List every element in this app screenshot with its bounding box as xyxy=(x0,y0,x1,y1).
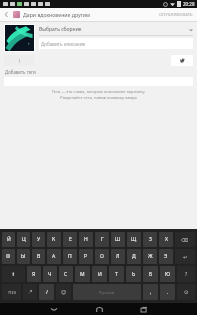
button[interactable]: К xyxy=(47,232,61,247)
staticText: Русский xyxy=(99,290,115,295)
staticText: Г xyxy=(101,236,104,243)
staticText: ОПУБЛИКОВАТЬ xyxy=(159,12,193,18)
staticText: ⬆ xyxy=(11,271,16,277)
button[interactable]: Поделиться xyxy=(4,55,34,66)
button[interactable]: О xyxy=(95,249,109,264)
button[interactable]: Добавить описание xyxy=(39,38,193,49)
button[interactable]: Ч xyxy=(43,266,57,282)
button[interactable]: ? xyxy=(177,266,195,282)
button[interactable]: Ввод xyxy=(177,284,195,300)
staticText: ☺ xyxy=(61,289,67,295)
button[interactable]: Ф xyxy=(2,249,15,264)
staticText: 🎤 xyxy=(28,290,33,294)
button[interactable]: Голосовой ввод xyxy=(23,284,37,300)
staticText: , xyxy=(150,289,152,296)
button[interactable]: Я xyxy=(27,266,41,282)
staticText: Ч xyxy=(48,271,52,278)
button[interactable]: Т xyxy=(109,266,124,282)
staticText: Разделяйте теги, нажав клавишу ввода xyxy=(0,95,197,100)
button[interactable]: ⌫ xyxy=(175,232,195,247)
button[interactable]: Главный экран xyxy=(85,303,113,315)
staticText: Добавить описание xyxy=(41,41,86,47)
button[interactable]: Р xyxy=(79,249,93,264)
staticText: Ф xyxy=(6,253,11,260)
button[interactable]: Ц xyxy=(17,232,30,247)
button[interactable]: Л xyxy=(111,249,125,264)
button[interactable]: Эмодзи xyxy=(56,284,71,300)
staticText: Ц xyxy=(22,236,26,243)
staticText: . xyxy=(167,289,169,296)
staticText: Теги — это слова, которые описывают карт… xyxy=(0,89,197,94)
staticText: Т xyxy=(115,271,118,278)
button[interactable]: У xyxy=(32,232,45,247)
staticText: Б xyxy=(149,271,153,278)
button[interactable]: Ж xyxy=(143,249,157,264)
button[interactable]: Й xyxy=(2,232,15,247)
button[interactable]: ↵ xyxy=(175,249,195,264)
button[interactable]: Изображение xyxy=(5,25,34,51)
button[interactable]: Назад xyxy=(40,303,68,315)
staticText: ? xyxy=(185,271,188,278)
staticText: П xyxy=(68,253,72,260)
button[interactable]: В xyxy=(32,249,45,264)
staticText: Р xyxy=(84,253,88,260)
staticText: Е xyxy=(69,236,72,243)
staticText: Ы xyxy=(21,253,26,260)
button[interactable]: Ю xyxy=(160,266,175,282)
button[interactable]: З xyxy=(143,232,157,247)
staticText: Й xyxy=(7,236,11,243)
staticText: С xyxy=(64,271,68,278)
button[interactable]: Ы xyxy=(17,249,30,264)
staticText: ↵ xyxy=(183,254,188,260)
staticText: / xyxy=(46,289,48,296)
staticText: Дари вдохновение другим xyxy=(23,11,91,18)
button[interactable]: Б xyxy=(143,266,158,282)
button[interactable]: М xyxy=(75,266,90,282)
button[interactable]: Х xyxy=(159,232,173,247)
button[interactable]: Пробел xyxy=(73,284,141,300)
staticText: М xyxy=(80,271,85,278)
staticText: И xyxy=(98,271,102,278)
staticText: 20:28 xyxy=(183,1,195,7)
button[interactable]: П xyxy=(63,249,77,264)
button[interactable]: Ь xyxy=(126,266,141,282)
button[interactable]: И xyxy=(92,266,107,282)
staticText: Ь xyxy=(132,271,136,278)
staticText: Л xyxy=(116,253,120,260)
button[interactable]: Выбрать сборник xyxy=(39,24,193,35)
button[interactable]: , xyxy=(143,284,158,300)
staticText: Щ xyxy=(131,236,137,243)
staticText: В xyxy=(37,253,41,260)
button[interactable]: Д xyxy=(127,249,141,264)
button[interactable]: ?123 xyxy=(2,284,21,300)
staticText: К xyxy=(52,236,56,243)
button[interactable]: Е xyxy=(63,232,77,247)
staticText: Ш xyxy=(115,236,121,243)
button[interactable]: Щ xyxy=(127,232,141,247)
button[interactable]: Г xyxy=(95,232,109,247)
button[interactable]: / xyxy=(39,284,54,300)
staticText: ⊙ xyxy=(184,289,189,295)
staticText: Добавить теги xyxy=(5,69,36,75)
button[interactable]: Недавние приложения xyxy=(130,303,158,315)
button[interactable]: Ш xyxy=(111,232,125,247)
button[interactable]: Twitter xyxy=(171,55,193,66)
staticText: З xyxy=(149,236,152,243)
staticText: Х xyxy=(165,236,168,243)
staticText: Выбрать сборник xyxy=(39,26,82,33)
button[interactable]: Н xyxy=(79,232,93,247)
staticText: А xyxy=(52,253,56,260)
button[interactable]: ⬆ xyxy=(2,266,25,282)
staticText: ?123 xyxy=(8,290,16,295)
staticText: Ж xyxy=(148,253,153,260)
button[interactable]: А xyxy=(47,249,61,264)
staticText: У xyxy=(37,236,41,243)
button[interactable]: . xyxy=(160,284,175,300)
button[interactable]: Назад xyxy=(0,8,13,21)
button[interactable]: Э xyxy=(159,249,173,264)
button[interactable]: С xyxy=(59,266,73,282)
staticText: Я xyxy=(32,271,36,278)
button[interactable]: ОПУБЛИКОВАТЬ xyxy=(155,9,197,21)
staticText: Э xyxy=(164,253,168,260)
